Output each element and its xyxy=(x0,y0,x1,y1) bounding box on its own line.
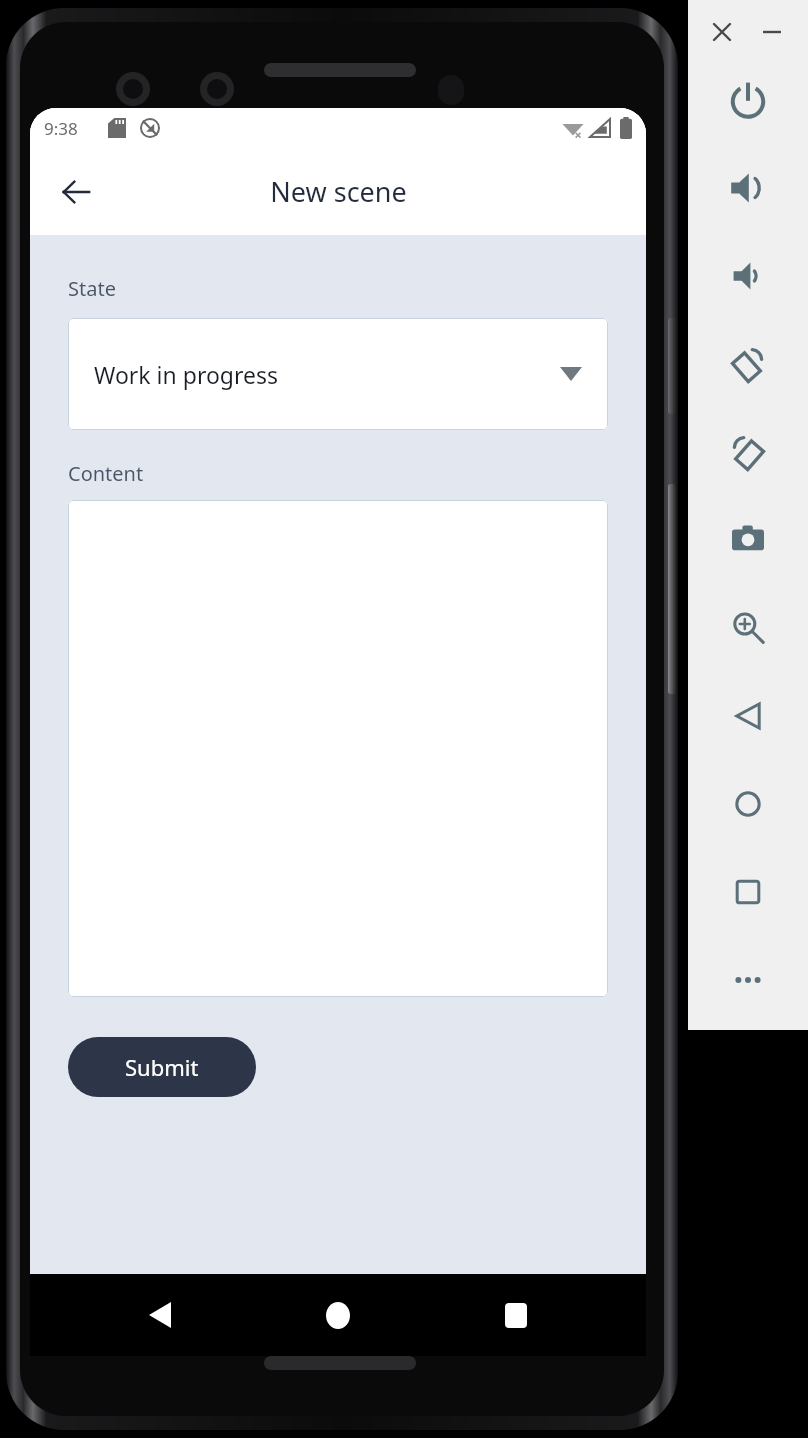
button[interactable]: Power xyxy=(718,70,778,130)
button[interactable]: Home xyxy=(718,774,778,834)
button[interactable]: Submit xyxy=(68,1037,256,1097)
button[interactable]: Minimize xyxy=(754,14,790,50)
button[interactable]: Overview xyxy=(718,862,778,922)
staticText: 9:38 xyxy=(44,117,78,140)
button[interactable]: Volume down xyxy=(718,246,778,306)
staticText: Work in progress xyxy=(94,359,279,390)
button[interactable]: Rotate left xyxy=(718,334,778,394)
staticText: Submit xyxy=(125,1052,199,1082)
button[interactable]: Rotate right xyxy=(718,422,778,482)
button[interactable]: Close xyxy=(704,14,740,50)
button[interactable]: Screenshot xyxy=(718,509,778,569)
button[interactable]: Volume up xyxy=(718,158,778,218)
button[interactable]: Zoom xyxy=(718,598,778,658)
button[interactable]: Work in progress xyxy=(68,318,608,430)
staticText: State xyxy=(68,275,116,302)
button[interactable]: Back xyxy=(52,168,100,216)
button[interactable]: Home xyxy=(310,1287,366,1343)
staticText: New scene xyxy=(270,173,407,210)
button[interactable]: Content text field xyxy=(68,500,608,997)
staticText: Content xyxy=(68,460,144,487)
button[interactable]: Back xyxy=(132,1287,188,1343)
button[interactable]: Recent apps xyxy=(488,1287,544,1343)
button[interactable]: More xyxy=(718,950,778,1010)
button[interactable]: Back xyxy=(718,686,778,746)
